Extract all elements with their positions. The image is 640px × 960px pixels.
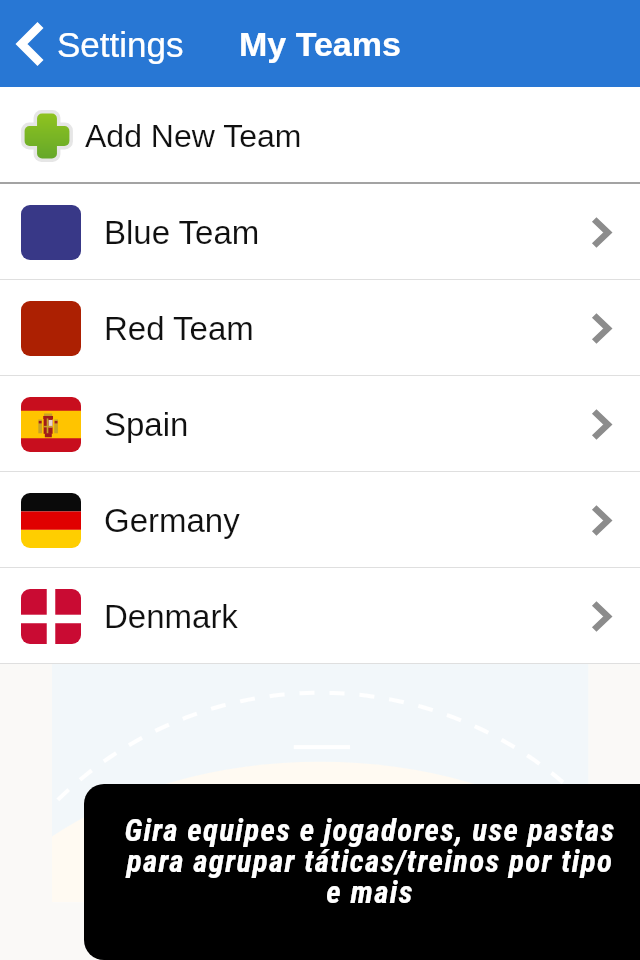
staticText: Blue Team: [104, 214, 260, 251]
other: Back: [17, 20, 45, 68]
staticText: Germany: [104, 502, 240, 539]
staticText: Denmark: [104, 598, 238, 635]
staticText: Add New Team: [85, 118, 302, 154]
staticText: Gira equipes e jogadores, use pastas par…: [100, 812, 640, 910]
button[interactable]: Germany: [0, 472, 640, 568]
staticText: Settings: [57, 25, 184, 64]
button[interactable]: Spain: [0, 376, 640, 472]
button[interactable]: Red Team: [0, 280, 640, 376]
button[interactable]: Back: [0, 12, 194, 76]
button[interactable]: Gira equipes e jogadores, use pastas par…: [84, 784, 640, 960]
staticText: My Teams: [239, 25, 401, 63]
button[interactable]: Add New Team: [0, 87, 640, 184]
button[interactable]: Blue Team: [0, 184, 640, 280]
staticText: Red Team: [104, 310, 254, 347]
button[interactable]: Denmark: [0, 568, 640, 664]
staticText: Spain: [104, 406, 189, 443]
